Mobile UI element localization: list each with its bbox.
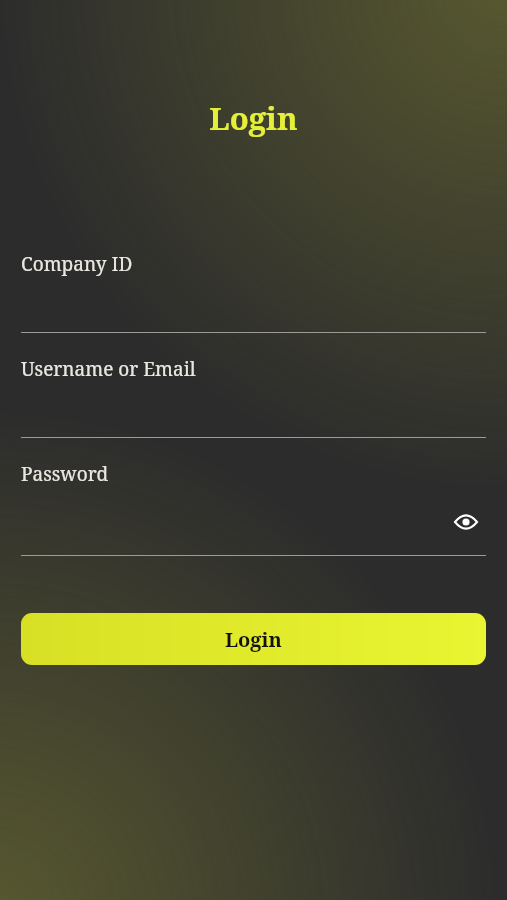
- staticText: Company ID: [21, 251, 133, 277]
- staticText: Login: [0, 97, 507, 139]
- staticText: Username or Email: [21, 356, 196, 382]
- button[interactable]: Login: [21, 613, 486, 665]
- button[interactable]: Show password: [446, 502, 486, 542]
- staticText: Login: [225, 626, 282, 653]
- staticText: Password: [21, 461, 109, 487]
